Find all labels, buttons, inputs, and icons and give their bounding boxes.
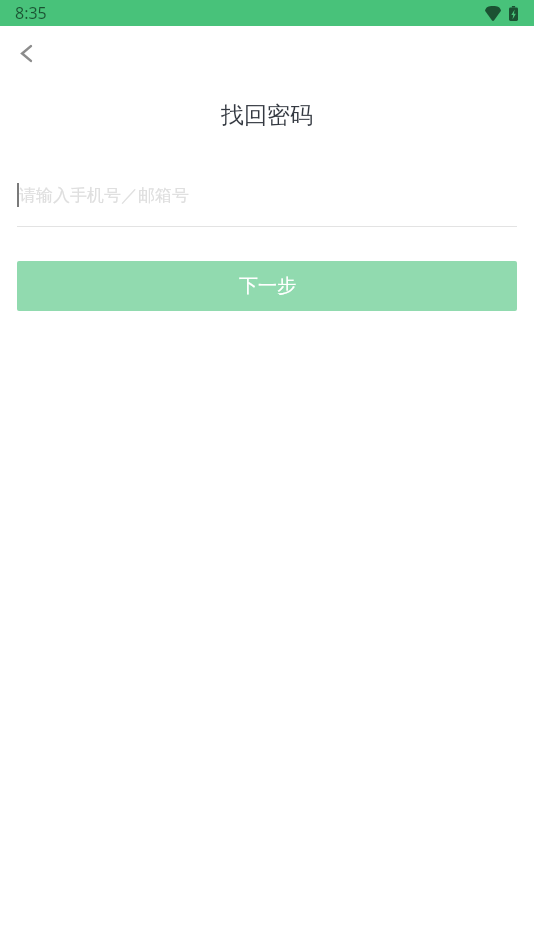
staticText: 请输入手机号／邮箱号 xyxy=(19,185,189,206)
button[interactable]: 下一步 xyxy=(17,261,517,311)
staticText: 找回密码 xyxy=(221,101,313,130)
button[interactable]: Back xyxy=(4,31,48,75)
staticText: 下一步 xyxy=(239,274,296,298)
staticText: 8:35 xyxy=(15,2,47,24)
button[interactable]: 请输入手机号／邮箱号 xyxy=(17,183,517,207)
